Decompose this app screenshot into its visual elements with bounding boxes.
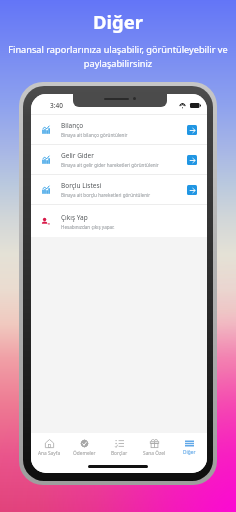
button[interactable]: Ana Sayfa [31,433,67,463]
staticText: Borçlu Listesi [61,181,102,190]
button[interactable]: Bilanço [31,115,207,144]
button[interactable]: Borçlar [102,433,137,463]
staticText: 3:40 [50,101,63,110]
staticText: Çıkış Yap [61,213,88,222]
staticText: Bilanço [61,121,84,130]
button[interactable]: Bilanço [187,125,197,135]
staticText: Binaya ait gelir gider hareketleri görün… [61,162,159,168]
staticText: Gelir Gider [61,151,94,160]
staticText: Ana Sayfa [38,450,61,457]
button[interactable]: Borçlu Listesi [31,175,207,204]
button[interactable]: Borçlu Listesi [187,185,197,195]
button[interactable]: Gelir Gider [187,155,197,165]
staticText: Finansal raporlarınıza ulaşabilir, görün… [2,43,234,70]
button[interactable]: Gelir Gider [31,145,207,174]
staticText: Hesabınızdan çıkış yapar. [61,224,115,230]
staticText: Diğer [183,449,196,456]
button[interactable]: Ödemeler [67,433,102,463]
staticText: Sana Özel [143,450,166,457]
button[interactable]: Diğer [172,433,207,463]
staticText: Ödemeler [73,450,96,457]
staticText: Binaya ait bilanço görüntülenir [61,132,128,138]
staticText: Borçlar [111,450,128,457]
button[interactable]: Sana Özel [137,433,172,463]
button[interactable]: Çıkış Yap [31,205,207,237]
staticText: Diğer [93,9,144,34]
staticText: Binaya ait borçlu hareketleri görüntülen… [61,192,151,198]
